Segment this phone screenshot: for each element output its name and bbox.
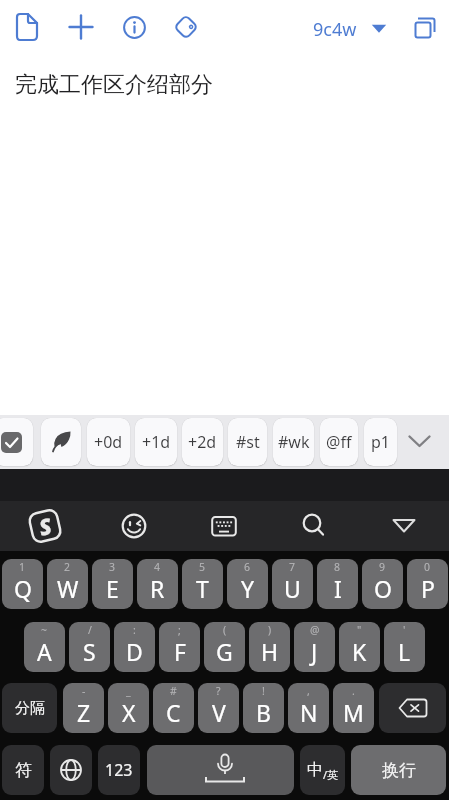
staticText: 9	[379, 560, 386, 574]
staticText: ?	[216, 684, 221, 698]
button[interactable]: 符	[2, 745, 44, 795]
staticText: K	[352, 636, 367, 667]
staticText: +0d	[94, 431, 123, 453]
button[interactable]: "	[339, 622, 380, 672]
button[interactable]: 中	[300, 745, 345, 795]
button[interactable]	[89, 501, 179, 551]
button[interactable]: #st	[228, 418, 267, 466]
button[interactable]	[269, 501, 359, 551]
button[interactable]: +2d	[182, 418, 223, 466]
button[interactable]: /	[69, 622, 110, 672]
staticText: 123	[105, 759, 133, 781]
staticText: 1	[19, 560, 26, 574]
staticText: !	[262, 684, 265, 698]
staticText: )	[268, 623, 272, 637]
staticText: V	[212, 697, 226, 728]
button[interactable]	[0, 418, 33, 466]
staticText: 完成工作区介绍部分	[15, 71, 213, 99]
button[interactable]	[41, 418, 81, 466]
button[interactable]: 分隔	[2, 683, 57, 733]
staticText: S	[36, 510, 55, 542]
button[interactable]: 8	[317, 559, 358, 609]
staticText: U	[284, 573, 301, 604]
button[interactable]: 9	[362, 559, 403, 609]
staticText: _	[126, 684, 131, 698]
staticText: 4	[154, 560, 161, 574]
staticText: +1d	[142, 431, 171, 453]
button[interactable]: ?	[198, 683, 239, 733]
button[interactable]: @	[294, 622, 335, 672]
staticText: ,	[307, 684, 310, 698]
staticText: 0	[424, 560, 431, 574]
button[interactable]: :	[114, 622, 155, 672]
staticText: ;	[178, 623, 181, 637]
button[interactable]: 4	[137, 559, 178, 609]
staticText: 2	[64, 560, 71, 574]
button[interactable]: !	[243, 683, 284, 733]
button[interactable]: 1	[2, 559, 43, 609]
staticText: +2d	[188, 431, 217, 453]
button[interactable]: ~	[24, 622, 65, 672]
button[interactable]: p1	[364, 418, 397, 466]
staticText: 换行	[382, 760, 416, 781]
staticText: 7	[289, 560, 296, 574]
button[interactable]: #	[153, 683, 194, 733]
button[interactable]: #wk	[273, 418, 314, 466]
button[interactable]: 123	[98, 745, 140, 795]
button[interactable]	[16, 13, 38, 41]
button[interactable]: 5	[182, 559, 223, 609]
staticText: X	[122, 697, 136, 728]
button[interactable]: .	[333, 683, 374, 733]
staticText: S	[83, 636, 96, 667]
staticText: #wk	[278, 431, 310, 453]
button[interactable]: @ff	[320, 418, 358, 466]
button[interactable]	[174, 15, 198, 39]
button[interactable]: ;	[159, 622, 200, 672]
button[interactable]: -	[63, 683, 104, 733]
staticText: D	[126, 636, 143, 667]
button[interactable]: 9c4w	[313, 17, 357, 42]
button[interactable]: )	[249, 622, 290, 672]
button[interactable]: 换行	[351, 745, 446, 795]
button[interactable]: 3	[92, 559, 133, 609]
staticText: p1	[371, 431, 390, 453]
button[interactable]: 6	[227, 559, 268, 609]
button[interactable]: 0	[407, 559, 448, 609]
button[interactable]	[408, 435, 431, 449]
staticText: Y	[241, 573, 255, 604]
staticText: H	[261, 636, 279, 667]
staticText: 中	[307, 760, 323, 780]
button[interactable]: +1d	[135, 418, 177, 466]
button[interactable]: (	[204, 622, 245, 672]
staticText: '	[403, 623, 406, 637]
button[interactable]	[123, 16, 146, 39]
staticText: ~	[41, 623, 48, 637]
staticText: -	[82, 684, 86, 698]
staticText: T	[196, 573, 209, 604]
button[interactable]: S	[0, 501, 89, 551]
button[interactable]	[50, 745, 92, 795]
button[interactable]: +0d	[87, 418, 130, 466]
staticText: R	[150, 573, 165, 604]
staticText: /英	[323, 767, 339, 782]
staticText: Q	[14, 573, 32, 604]
button[interactable]: 7	[272, 559, 313, 609]
button[interactable]: ,	[288, 683, 329, 733]
button[interactable]	[179, 501, 269, 551]
button[interactable]: _	[108, 683, 149, 733]
button[interactable]	[147, 745, 294, 795]
button[interactable]	[414, 17, 438, 39]
staticText: 符	[15, 760, 32, 781]
button[interactable]	[379, 683, 446, 733]
button[interactable]: 2	[47, 559, 88, 609]
button[interactable]	[69, 15, 93, 39]
staticText: #	[170, 684, 177, 698]
staticText: 分隔	[15, 699, 45, 718]
staticText: G	[216, 636, 233, 667]
staticText: 5	[199, 560, 206, 574]
staticText: @	[310, 623, 320, 637]
button[interactable]: '	[384, 622, 425, 672]
staticText: #st	[236, 431, 260, 453]
button[interactable]	[359, 501, 449, 551]
staticText: O	[374, 573, 392, 604]
